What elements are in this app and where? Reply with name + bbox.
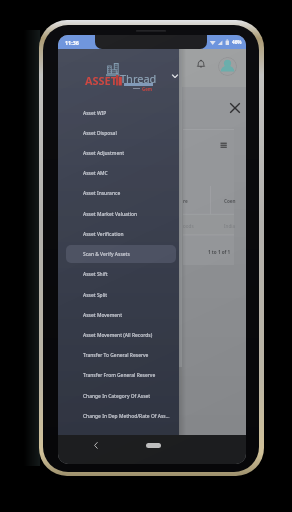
button[interactable]: Change In Category Of Asset (58, 386, 179, 406)
staticText: Asset Disposal (83, 130, 117, 137)
button[interactable]: Home (146, 443, 161, 448)
staticText: Gem (142, 86, 153, 92)
staticText: 1 to 1 of 1 (208, 249, 231, 255)
button[interactable]: Asset Adjustment (58, 143, 179, 163)
staticText: Asset Movement (All Records) (83, 332, 153, 339)
staticText: Change In Dep Method/Rate Of Ass... (83, 413, 170, 420)
staticText: Asset Verification (83, 231, 124, 238)
staticText: Asset Movement (83, 312, 123, 319)
staticText: Asset Insurance (83, 190, 121, 197)
staticText: Thread (120, 71, 157, 86)
button[interactable]: Asset Movement (58, 305, 179, 325)
button[interactable]: Notifications (196, 59, 206, 69)
button[interactable]: Asset WIP (58, 103, 179, 123)
button[interactable]: Back (89, 438, 104, 453)
button[interactable]: Close (227, 100, 243, 116)
staticText: Asset AMC (83, 170, 108, 177)
button[interactable]: Asset Disposal (58, 123, 179, 143)
button[interactable]: Transfer From General Reserve (58, 365, 179, 385)
staticText: India (224, 223, 235, 229)
staticText: ASSET (85, 73, 117, 88)
button[interactable]: Asset Insurance (58, 183, 179, 203)
button[interactable]: Asset Verification (58, 224, 179, 244)
button[interactable]: Transfer To General Reserve (58, 345, 179, 365)
staticText: Transfer From General Reserve (83, 372, 156, 379)
button[interactable]: Asset AMC (58, 163, 179, 183)
staticText: oods (183, 223, 194, 229)
staticText: 11:36 (65, 39, 79, 46)
button[interactable]: Asset Market Valuation (58, 204, 179, 224)
button[interactable]: Change In Dep Method/Rate Of Ass... (58, 406, 179, 426)
button[interactable]: Asset Movement (All Records) (58, 325, 179, 345)
staticText: Asset Split (83, 292, 108, 299)
staticText: Asset Shift (83, 271, 108, 278)
staticText: Asset WIP (83, 110, 107, 117)
button[interactable]: Profile (218, 57, 237, 76)
button[interactable]: Expand menu (169, 70, 181, 82)
button[interactable]: Asset Split (58, 285, 179, 305)
staticText: 46% (232, 39, 242, 45)
staticText: Scan & Verify Assets (83, 251, 130, 258)
staticText: Asset Market Valuation (83, 211, 138, 218)
staticText: Coen (224, 198, 236, 204)
staticText: Asset Adjustment (83, 150, 125, 157)
button[interactable]: Scan & Verify Assets (58, 244, 179, 264)
button[interactable]: Asset Shift (58, 264, 179, 284)
staticText: Transfer To General Reserve (83, 352, 149, 359)
staticText: Change In Category Of Asset (83, 393, 151, 400)
staticText: re (183, 198, 188, 204)
